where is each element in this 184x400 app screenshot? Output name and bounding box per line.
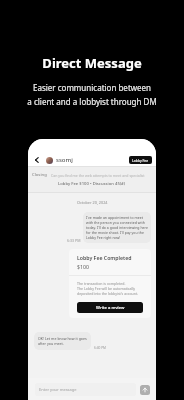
staticText: I've made an appointment to meet with th… [86, 215, 148, 240]
staticText: Can you find me the web attempts to meet… [51, 173, 145, 178]
staticText: The transaction is completed. The Lobby … [77, 281, 139, 296]
staticText: Lobby Fee $100 • Discussion 45(#) [58, 181, 126, 187]
staticText: Lobby Fee Completed [77, 254, 132, 261]
staticText: 6:33 PM [67, 238, 81, 243]
staticText: OK! Let me know how it goes after you me… [38, 336, 87, 346]
staticText: October 20, 2024 [77, 200, 108, 205]
staticText: Write a review [96, 305, 125, 311]
staticText: 6:40 PM [94, 346, 106, 350]
staticText: Closing [32, 172, 47, 178]
button[interactable]: Lobby Fee [129, 156, 152, 164]
staticText: $100 [77, 263, 89, 270]
staticText: ssomj [56, 156, 73, 164]
button[interactable]: Enter your message [35, 383, 136, 396]
staticText: Easier communication between a client an… [27, 82, 157, 107]
staticText: Direct Message [42, 54, 142, 72]
button[interactable]: Send [140, 385, 150, 395]
button[interactable]: Write a review [77, 302, 143, 313]
button[interactable]: Back [32, 155, 42, 165]
staticText: Enter your message [39, 387, 77, 392]
staticText: Lobby Fee [132, 158, 149, 163]
